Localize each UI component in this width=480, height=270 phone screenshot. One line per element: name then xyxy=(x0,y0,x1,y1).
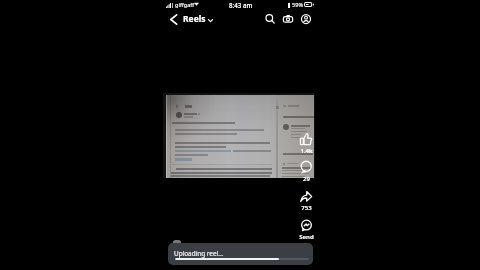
button[interactable]: Reels xyxy=(183,13,213,25)
button[interactable]: Share xyxy=(297,188,315,205)
button[interactable]: Comment xyxy=(297,158,315,176)
button[interactable]: Profile xyxy=(299,12,313,26)
staticText: 753 xyxy=(301,204,312,212)
button[interactable]: Camera xyxy=(281,12,295,26)
staticText: giffgaff xyxy=(175,1,195,9)
staticText: Reels xyxy=(183,13,206,25)
staticText: 29 xyxy=(303,175,310,183)
button[interactable]: Like xyxy=(297,130,315,148)
button[interactable]: Send xyxy=(298,217,315,234)
staticText: 1.4k xyxy=(300,147,313,155)
staticText: Uploading reel... xyxy=(174,249,224,258)
button[interactable]: Search xyxy=(263,12,277,26)
staticText: Send xyxy=(299,233,314,241)
button[interactable]: Uploading reel... xyxy=(168,243,313,265)
staticText: 8:43 am xyxy=(229,1,253,9)
button[interactable]: Back xyxy=(165,11,182,27)
staticText: 59% xyxy=(292,1,304,9)
